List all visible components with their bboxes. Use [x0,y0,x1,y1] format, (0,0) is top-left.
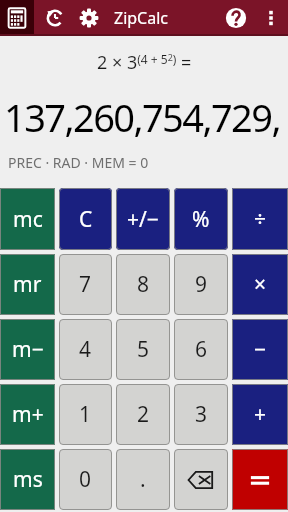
button[interactable]: History [40,3,70,33]
button[interactable]: 6 [174,319,228,380]
staticText: 7 [79,270,92,299]
staticText: PREC · RAD · MEM = 0 [8,153,149,172]
staticText: 2 [137,400,150,429]
staticText: C [79,205,93,234]
button[interactable]: 5 [116,319,170,380]
button[interactable]: ms [0,449,55,510]
button[interactable]: Backspace [174,449,228,510]
button[interactable]: 9 [174,254,228,315]
button[interactable]: m+ [0,384,55,445]
staticText: . [140,465,146,494]
staticText: 8 [137,270,150,299]
staticText: mr [13,270,42,299]
button[interactable]: More options [258,0,284,36]
staticText: × [254,270,267,299]
staticText: ZipCalc [114,7,169,29]
staticText: 2 × 3(4 + 52) = [97,50,192,75]
staticText: + [254,400,267,429]
staticText: 9 [195,270,208,299]
button[interactable]: 8 [116,254,170,315]
staticText: 1 [79,400,92,429]
staticText: ms [13,465,43,494]
staticText: − [254,335,267,364]
staticText: 5 [137,335,150,364]
button[interactable]: + [232,384,288,445]
staticText: 3 [195,400,208,429]
button[interactable]: × [232,254,288,315]
button[interactable]: Help [220,2,252,34]
button[interactable]: +/− [116,188,170,250]
staticText: m+ [12,400,44,429]
button[interactable]: 4 [59,319,112,380]
button[interactable]: 1 [59,384,112,445]
button[interactable]: Calculator [0,0,34,36]
staticText: m− [12,335,44,364]
button[interactable]: % [174,188,228,250]
button[interactable]: 0 [59,449,112,510]
staticText: 0 [79,465,92,494]
button[interactable] [232,449,288,510]
staticText: 137,260,754,729,766 [4,91,284,143]
button[interactable]: m− [0,319,55,380]
button[interactable]: 3 [174,384,228,445]
button[interactable]: Settings [74,3,104,33]
staticText: % [192,205,210,234]
button[interactable]: C [59,188,112,250]
button[interactable]: mr [0,254,55,315]
staticText: mc [13,205,43,234]
button[interactable]: ÷ [232,188,288,250]
button[interactable]: 7 [59,254,112,315]
staticText: ÷ [254,205,267,234]
staticText: 6 [195,335,208,364]
staticText: 4 [79,335,92,364]
button[interactable]: − [232,319,288,380]
button[interactable]: 2 [116,384,170,445]
staticText: +/− [127,205,159,234]
button[interactable]: . [116,449,170,510]
button[interactable]: mc [0,188,55,250]
